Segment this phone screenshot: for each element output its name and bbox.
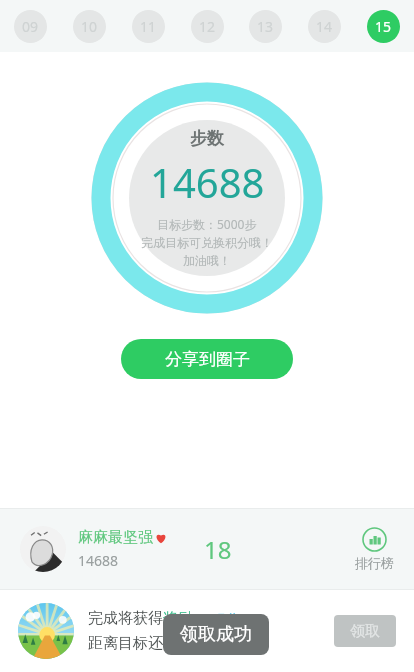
button[interactable]: 10 xyxy=(73,10,106,43)
button[interactable]: 麻麻最坚强 xyxy=(0,509,414,589)
staticText: 14 xyxy=(316,17,333,36)
staticText: 完成目标可兑换积分哦！ xyxy=(141,235,273,250)
staticText: 18 xyxy=(204,533,232,566)
staticText: 11 xyxy=(140,17,157,36)
button[interactable]: 14 xyxy=(308,10,341,43)
staticText: 09 xyxy=(22,17,39,36)
button[interactable]: 15 xyxy=(367,10,400,43)
staticText: 距离目标还有 xyxy=(88,634,178,653)
staticText: 目标步数：5000步 xyxy=(157,216,257,232)
button[interactable]: 分享到圈子 xyxy=(121,339,293,379)
staticText: 加油哦！ xyxy=(183,253,231,268)
button[interactable]: 领取 xyxy=(334,615,396,647)
staticText: 完成将获得 xyxy=(88,609,163,628)
staticText: 麻麻最坚强 xyxy=(78,528,153,547)
staticText: 12 xyxy=(199,17,216,36)
staticText: 领取成功 xyxy=(180,623,252,646)
staticText: 奖励 xyxy=(163,609,193,628)
button[interactable]: 完成将获得 xyxy=(0,590,414,672)
button[interactable]: 09 xyxy=(14,10,47,43)
button[interactable]: 13 xyxy=(249,10,282,43)
button[interactable]: 11 xyxy=(132,10,165,43)
staticText: 15 xyxy=(375,17,392,36)
staticText: 排行榜 xyxy=(355,555,394,571)
staticText: 步数 xyxy=(190,128,224,149)
button[interactable]: 排行榜 xyxy=(355,527,394,571)
button[interactable]: 12 xyxy=(191,10,224,43)
staticText: 14688 xyxy=(78,551,119,570)
staticText: 30积分 xyxy=(193,609,241,629)
staticText: 13 xyxy=(257,17,274,36)
staticText: 0 xyxy=(178,634,187,654)
staticText: 领取 xyxy=(350,622,380,641)
staticText: 14688 xyxy=(150,155,265,209)
staticText: 10 xyxy=(81,17,98,36)
staticText: 分享到圈子 xyxy=(165,349,250,370)
